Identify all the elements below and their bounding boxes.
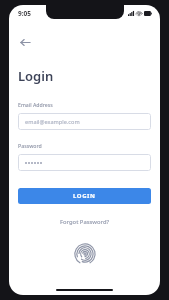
button[interactable]: email@example.com	[18, 113, 151, 130]
staticText: Email Address	[18, 101, 53, 108]
staticText: Login	[18, 67, 54, 85]
button[interactable]: Forgot Password?	[54, 216, 116, 228]
staticText: Password	[18, 142, 42, 149]
button[interactable]: Fingerprint login	[71, 240, 99, 268]
button[interactable]	[18, 154, 151, 171]
staticText: email@example.com	[25, 118, 80, 126]
button[interactable]: Back	[14, 31, 36, 53]
staticText: LOGIN	[73, 192, 96, 200]
button[interactable]: LOGIN	[18, 188, 151, 204]
staticText: Forgot Password?	[60, 218, 110, 226]
staticText: 9:05	[18, 9, 31, 18]
